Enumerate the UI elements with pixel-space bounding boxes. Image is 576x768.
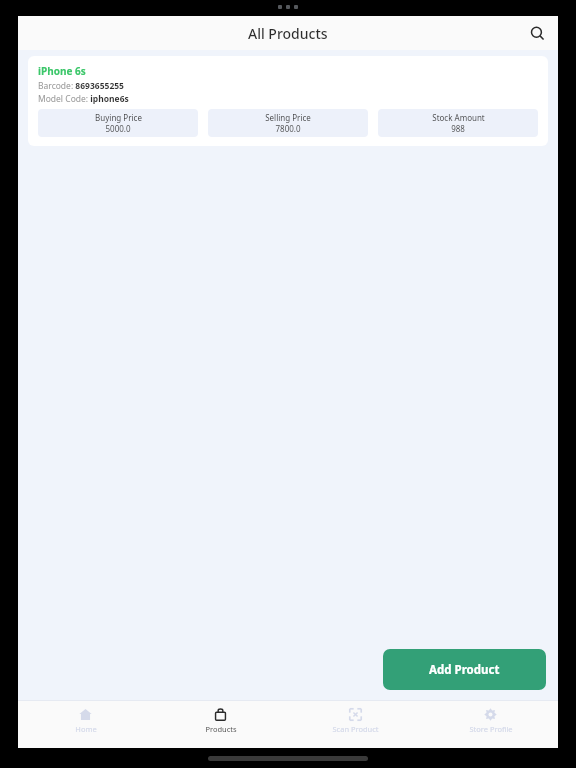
staticText: Products bbox=[205, 724, 237, 734]
staticText: 988 bbox=[451, 123, 465, 134]
button[interactable]: Buying Price bbox=[38, 109, 198, 137]
staticText: Store Profile bbox=[469, 724, 513, 734]
button[interactable]: Products bbox=[153, 701, 288, 734]
staticText: Scan Product bbox=[332, 724, 379, 734]
staticText: All Products bbox=[248, 24, 328, 43]
staticText: Selling Price bbox=[265, 112, 311, 123]
button[interactable]: iPhone 6s bbox=[28, 56, 548, 146]
staticText: Add Product bbox=[429, 662, 500, 678]
staticText: 7800.0 bbox=[275, 123, 301, 134]
staticText: 5000.0 bbox=[105, 123, 131, 134]
button[interactable]: Store Profile bbox=[423, 701, 558, 734]
staticText: iPhone 6s bbox=[38, 64, 86, 78]
staticText: Model Code: iphone6s bbox=[38, 93, 129, 105]
button[interactable]: Search bbox=[522, 18, 552, 48]
staticText: Stock Amount bbox=[432, 112, 485, 123]
button[interactable]: Home bbox=[18, 701, 153, 734]
staticText: Buying Price bbox=[95, 112, 142, 123]
staticText: Barcode: 8693655255 bbox=[38, 80, 124, 92]
button[interactable]: Stock Amount bbox=[378, 109, 538, 137]
button[interactable]: Add Product bbox=[383, 649, 546, 690]
button[interactable]: Selling Price bbox=[208, 109, 368, 137]
staticText: Home bbox=[75, 724, 97, 734]
button[interactable]: Scan Product bbox=[288, 701, 423, 734]
